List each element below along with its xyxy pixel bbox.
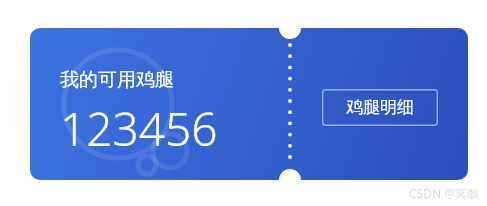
button[interactable]: 鸡腿明细 (322, 89, 438, 126)
staticText: 我的可用鸡腿 (60, 68, 174, 92)
staticText: CSDN @冥骸 (409, 185, 479, 201)
staticText: 鸡腿明细 (346, 97, 414, 118)
staticText: 123456 (60, 97, 218, 160)
